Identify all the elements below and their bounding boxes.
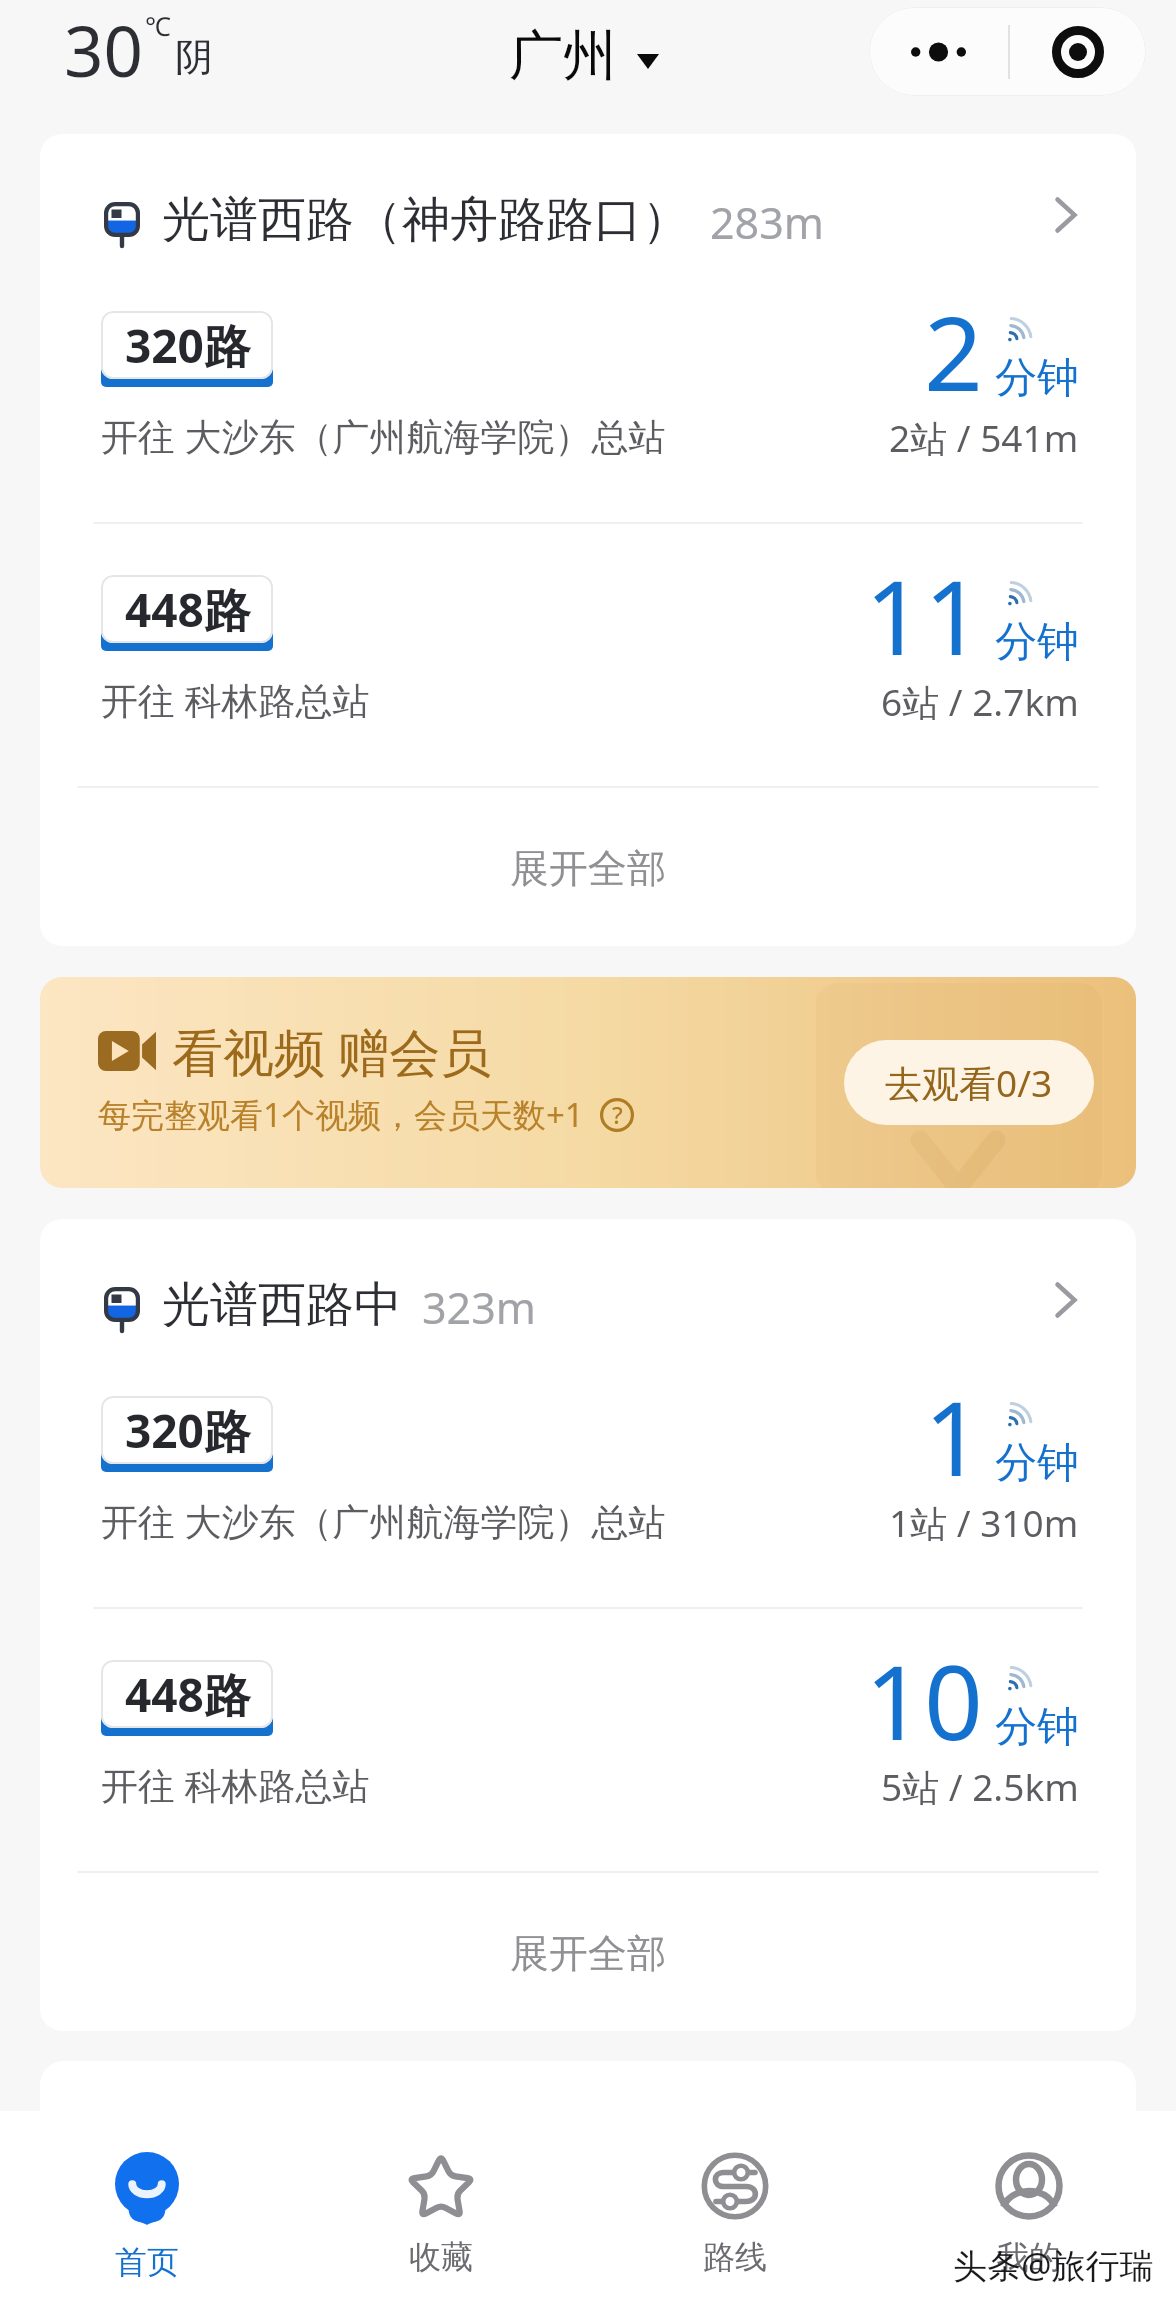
staticText: 阴 [175,33,213,81]
button[interactable]: 看视频 赠会员 [40,977,1136,1188]
staticText: 分钟 [995,616,1079,669]
staticText: 1站 / 310m [889,1497,1079,1548]
staticText: 分钟 [995,352,1079,405]
staticText: 320路 [125,1399,250,1462]
staticText: 开往 科林路总站 [101,674,370,725]
staticText: 去观看0/3 [885,1057,1053,1108]
staticText: 广州 [509,22,617,90]
staticText: 开往 大沙东（广州航海学院）总站 [101,410,666,461]
staticText: 10 [865,1630,983,1770]
staticText: 我的 [997,2237,1061,2277]
button[interactable]: More options [869,7,1008,96]
staticText: 头条@旅行瑞 [953,2242,1154,2288]
button[interactable]: 收藏 [294,2111,588,2310]
button[interactable]: 首页 [0,2111,294,2310]
button[interactable]: 320路 [40,258,1136,522]
staticText: 448路 [125,1663,250,1726]
staticText: 看视频 赠会员 [172,1016,492,1086]
button[interactable]: 光谱西路（神舟路路口） [40,134,1136,258]
button[interactable]: 320路 [40,1343,1136,1607]
staticText: 2站 / 541m [889,412,1079,463]
button[interactable]: 448路 [40,522,1136,786]
button[interactable]: 广州 [509,22,659,90]
button[interactable]: 光谱西路中 [40,1219,1136,1343]
staticText: 1 [924,1366,983,1506]
button[interactable]: Close mini program [1010,7,1146,96]
staticText: 光谱西路中 [162,1275,402,1335]
staticText: 每完整观看1个视频，会员天数+1 [98,1092,584,1137]
button[interactable]: 路线 [588,2111,882,2310]
staticText: 分钟 [995,1701,1079,1754]
staticText: 路线 [703,2237,767,2277]
staticText: 展开全部 [510,1929,666,1978]
staticText: 收藏 [409,2237,473,2277]
staticText: 320路 [125,314,250,377]
staticText: 2 [924,281,983,421]
staticText: 开往 科林路总站 [101,1759,370,1810]
staticText: 展开全部 [510,844,666,893]
staticText: 30 [64,3,143,97]
staticText: 11 [865,545,983,685]
staticText: ? [612,1098,623,1131]
button[interactable]: 我的 [882,2111,1176,2310]
staticText: 448路 [125,578,250,641]
staticText: 分钟 [995,1437,1079,1490]
staticText: 首页 [115,2242,179,2282]
staticText: 323m [422,1278,536,1337]
staticText: 283m [710,193,824,252]
button[interactable]: 展开全部 [40,786,1136,946]
button[interactable]: 展开全部 [40,1871,1136,2031]
staticText: ℃ [145,8,171,43]
staticText: 光谱西路（神舟路路口） [162,190,690,250]
staticText: 开往 大沙东（广州航海学院）总站 [101,1495,666,1546]
button[interactable]: 去观看0/3 [844,1040,1094,1125]
staticText: 6站 / 2.7km [881,676,1079,727]
button[interactable]: 448路 [40,1607,1136,1871]
staticText: 5站 / 2.5km [881,1761,1079,1812]
